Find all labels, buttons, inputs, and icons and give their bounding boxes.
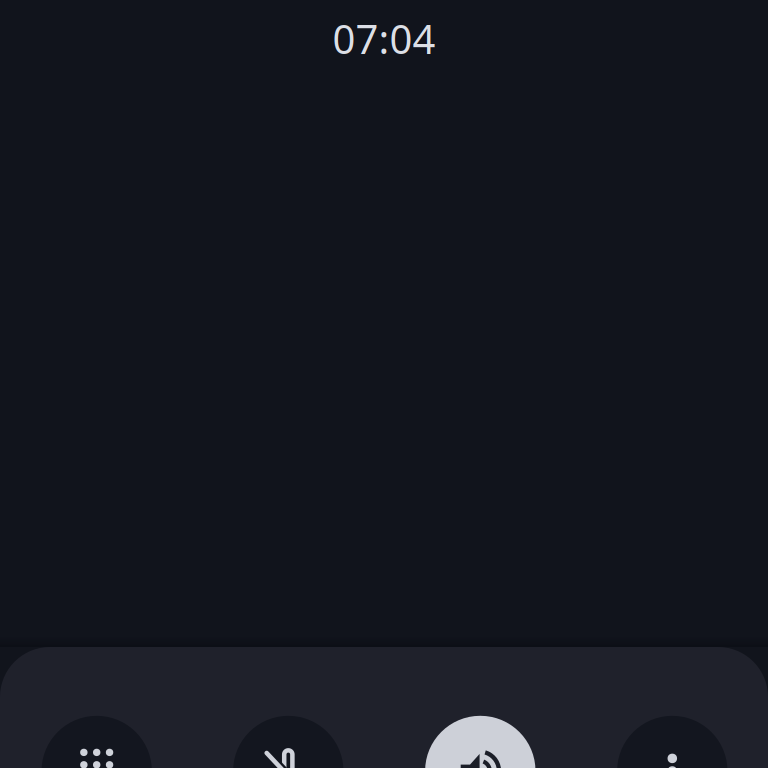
button[interactable]: More: [617, 716, 727, 768]
button[interactable]: Keypad: [41, 716, 152, 768]
staticText: 07:04: [332, 12, 435, 65]
button[interactable]: Speaker: [425, 716, 535, 768]
button[interactable]: Mute: [233, 716, 343, 768]
